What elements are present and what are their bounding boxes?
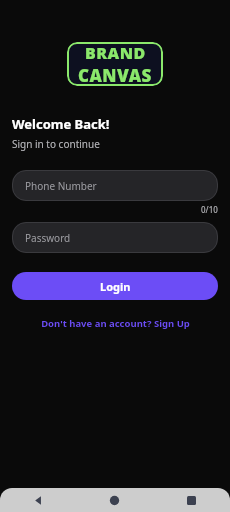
button[interactable]: Password: [12, 222, 218, 253]
staticText: BRAND: [85, 42, 146, 64]
button[interactable]: Back: [0, 488, 76, 512]
button[interactable]: Recent apps: [153, 488, 230, 512]
staticText: Phone Number: [25, 179, 97, 193]
staticText: Password: [25, 231, 71, 245]
button[interactable]: Home: [76, 488, 153, 512]
button[interactable]: Login: [12, 272, 218, 300]
staticText: Welcome Back!: [12, 115, 110, 133]
staticText: 0/10: [201, 204, 218, 215]
staticText: CANVAS: [78, 64, 152, 86]
staticText: Sign in to continue: [12, 137, 100, 151]
staticText: Login: [100, 279, 131, 294]
staticText: Don't have an account? Sign Up: [41, 317, 190, 330]
button[interactable]: Don't have an account? Sign Up: [33, 314, 198, 333]
button[interactable]: Phone Number: [12, 170, 218, 201]
